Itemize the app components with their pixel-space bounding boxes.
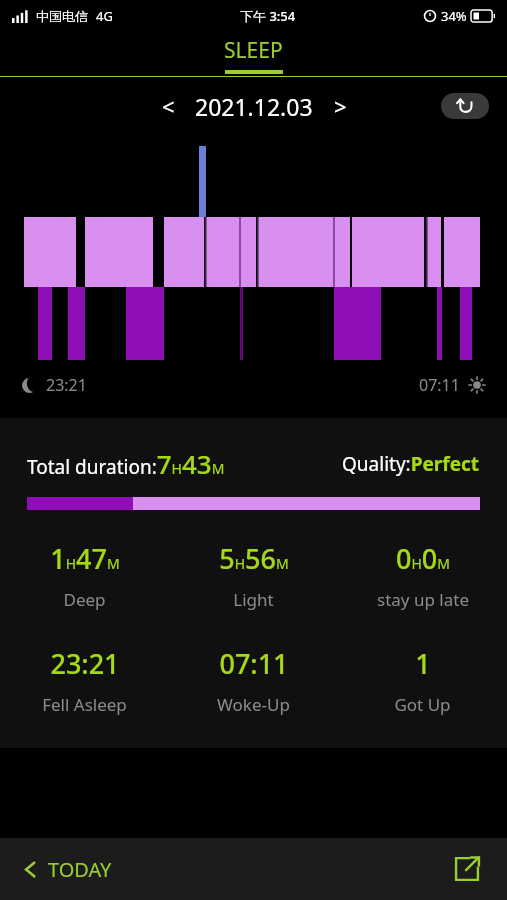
- staticText: 4G: [96, 7, 113, 25]
- staticText: Total duration:7H43M: [27, 446, 225, 481]
- staticText: Deep: [63, 588, 106, 611]
- staticText: Got Up: [394, 693, 451, 716]
- staticText: Woke-Up: [217, 693, 290, 716]
- staticText: 5H56M: [219, 540, 289, 577]
- staticText: 中国电信: [36, 8, 88, 24]
- staticText: 23:21: [50, 645, 120, 682]
- staticText: 1H47M: [50, 540, 120, 577]
- staticText: Light: [233, 588, 274, 611]
- button[interactable]: 07:11: [169, 645, 338, 716]
- button[interactable]: 1H47M: [0, 540, 169, 611]
- staticText: 07:11: [219, 645, 289, 682]
- staticText: 1: [415, 645, 431, 682]
- button[interactable]: 5H56M: [169, 540, 338, 611]
- button[interactable]: 23:21: [0, 645, 169, 716]
- staticText: Fell Asleep: [42, 693, 127, 716]
- staticText: <: [162, 91, 175, 121]
- button[interactable]: Next day: [323, 89, 357, 123]
- staticText: Quality:Perfect: [342, 451, 480, 477]
- staticText: 0H0M: [396, 540, 450, 577]
- button[interactable]: 0H0M: [338, 540, 507, 611]
- staticText: 2021.12.03: [195, 91, 313, 122]
- staticText: stay up late: [377, 588, 469, 611]
- staticText: 下午 3:54: [240, 7, 296, 25]
- staticText: TODAY: [48, 856, 112, 883]
- button[interactable]: Share: [447, 849, 487, 889]
- staticText: 34%: [441, 7, 467, 25]
- staticText: >: [334, 91, 347, 121]
- button[interactable]: 1: [338, 645, 507, 716]
- staticText: SLEEP: [224, 36, 283, 65]
- button[interactable]: Previous day: [151, 89, 185, 123]
- button[interactable]: TODAY: [22, 856, 112, 883]
- button[interactable]: Refresh: [441, 93, 489, 119]
- staticText: 07:11: [419, 374, 460, 396]
- button[interactable]: SLEEP: [224, 36, 283, 74]
- staticText: 23:21: [46, 374, 87, 396]
